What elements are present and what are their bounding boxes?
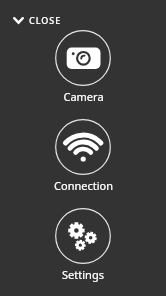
staticText: CLOSE	[29, 14, 62, 26]
button[interactable]: Camera	[0, 30, 166, 104]
button[interactable]: CLOSE	[0, 0, 166, 40]
staticText: Camera	[63, 89, 104, 104]
staticText: Settings	[62, 267, 104, 282]
staticText: Connection	[54, 178, 113, 193]
button[interactable]: Settings	[0, 208, 166, 282]
button[interactable]: Connection	[0, 119, 166, 193]
